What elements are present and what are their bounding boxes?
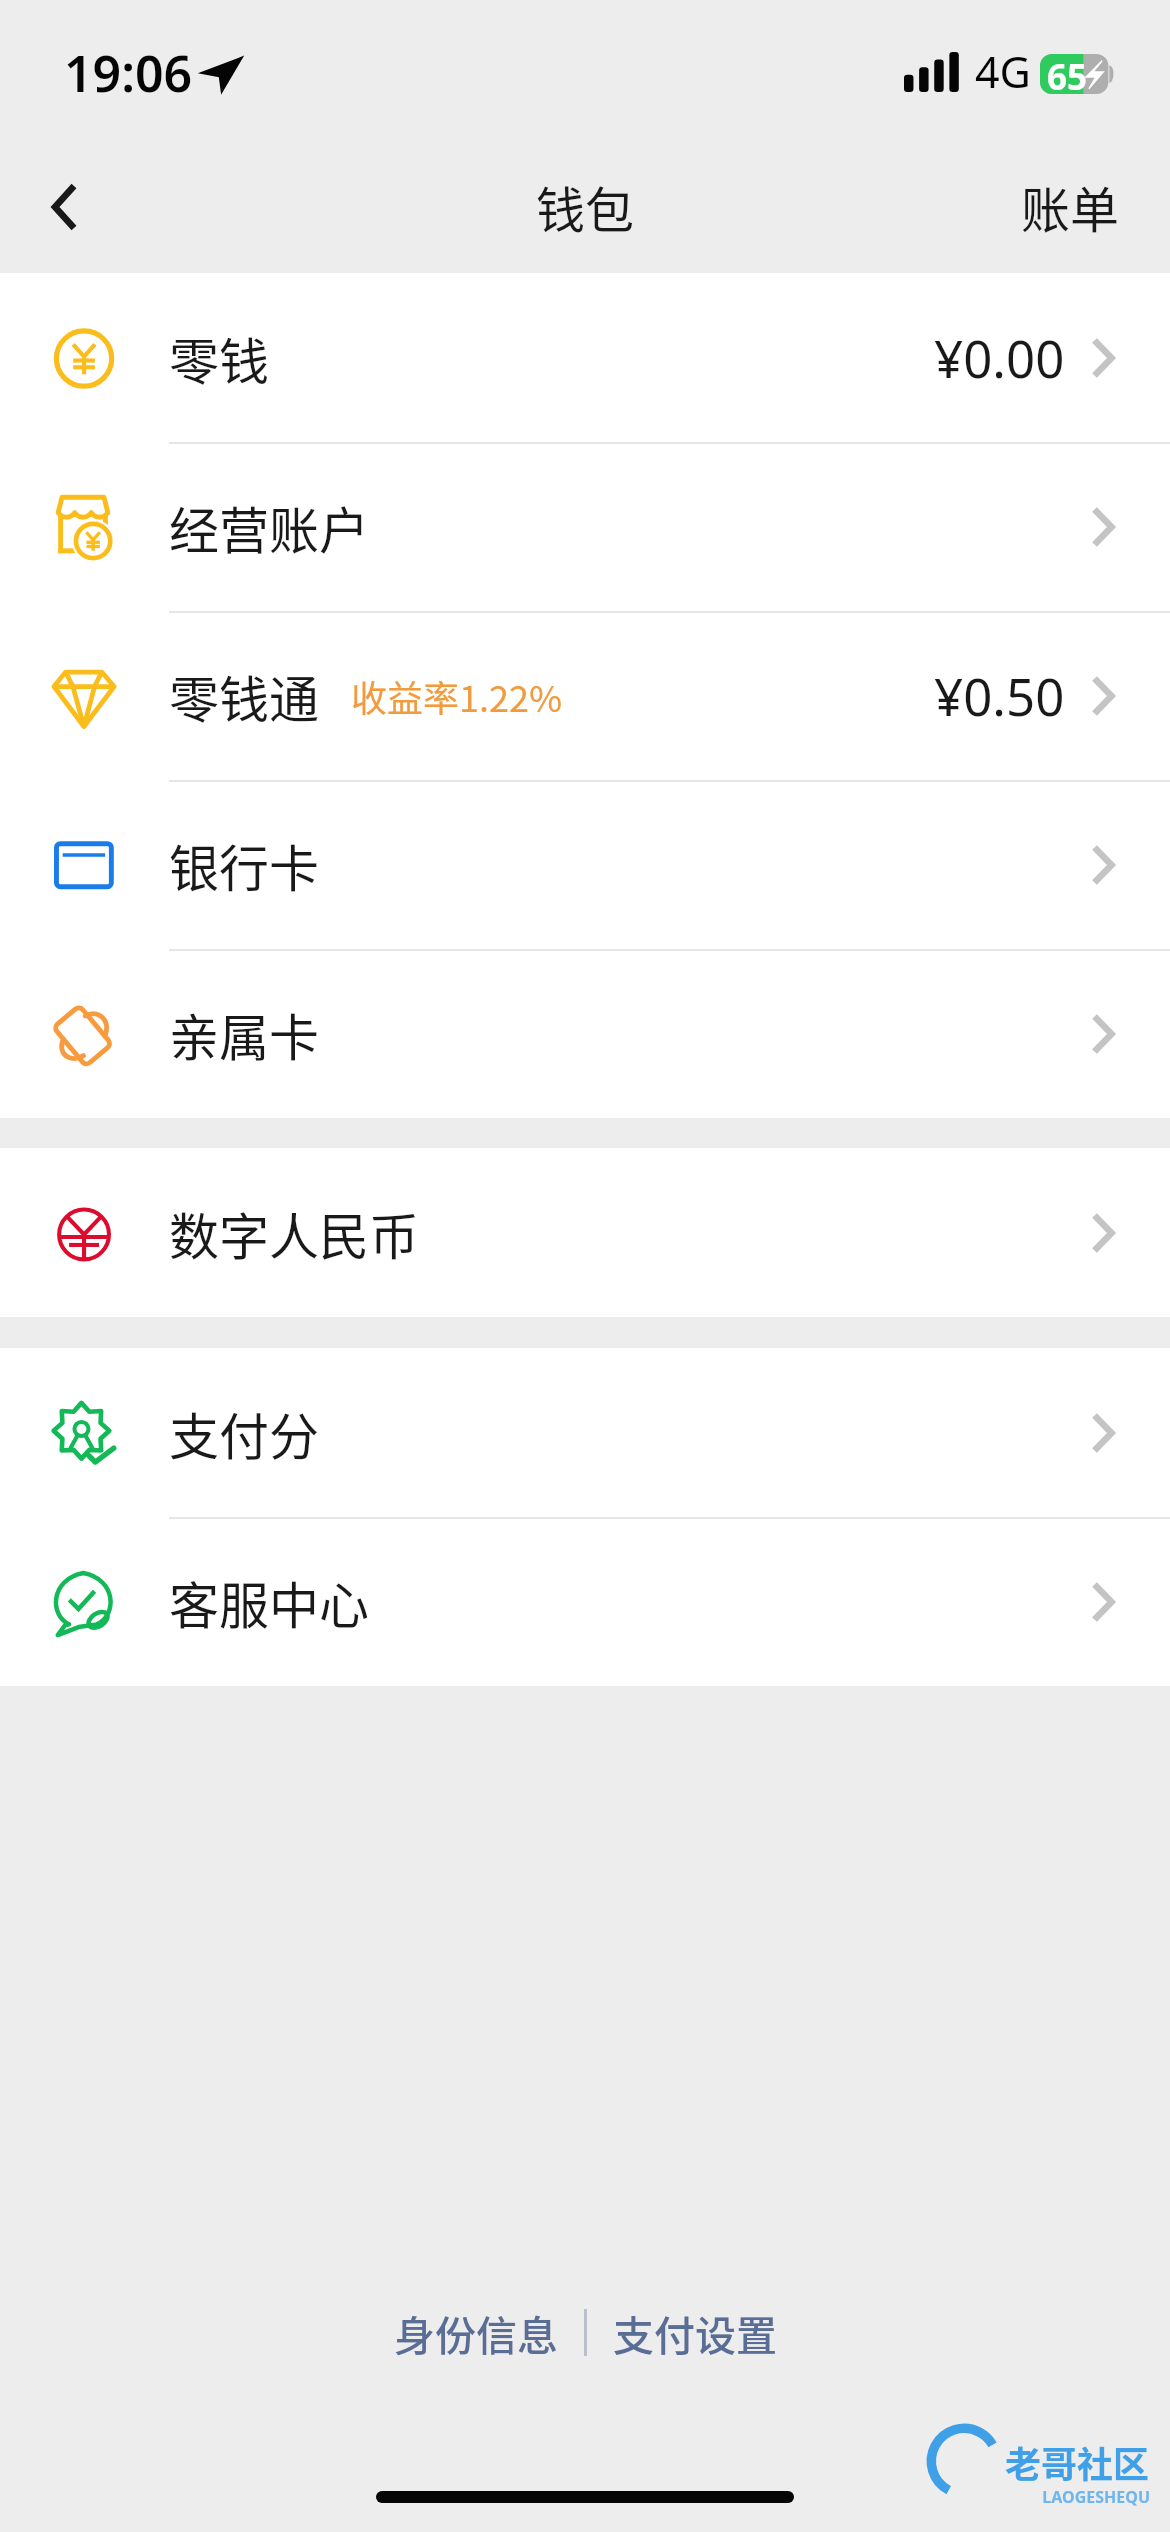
button[interactable]: 亲属卡 [0, 949, 1170, 1118]
button[interactable]: 客服中心 [0, 1517, 1170, 1686]
staticText: 账单 [1021, 171, 1120, 242]
staticText: ¥0.00 [934, 323, 1065, 392]
staticText: 老哥社区 [1005, 2436, 1150, 2488]
staticText: 支付分 [169, 1397, 319, 1469]
staticText: 支付设置 [613, 2303, 777, 2362]
button[interactable]: 身份信息 [380, 2289, 572, 2376]
staticText: 零钱通 [169, 660, 319, 732]
staticText: 零钱 [169, 322, 269, 394]
staticText: 银行卡 [169, 829, 319, 901]
staticText: 亲属卡 [169, 998, 319, 1070]
button[interactable]: 银行卡 [0, 780, 1170, 949]
button[interactable]: 零钱 [0, 273, 1170, 442]
button[interactable]: 数字人民币 [0, 1148, 1170, 1317]
staticText: 身份信息 [394, 2303, 558, 2362]
staticText: ¥0.50 [934, 661, 1065, 730]
staticText: 4G [975, 42, 1031, 101]
staticText: 钱包 [536, 171, 635, 242]
button[interactable]: 账单 [991, 140, 1170, 273]
staticText: 19:06 [64, 39, 193, 107]
button[interactable]: 经营账户 [0, 442, 1170, 611]
staticText: 客服中心 [169, 1566, 369, 1638]
staticText: LAOGESHEQU [1042, 2486, 1150, 2508]
staticText: 数字人民币 [169, 1197, 419, 1269]
button[interactable]: 零钱通 [0, 611, 1170, 780]
staticText: 65 [1047, 53, 1088, 93]
button[interactable]: 支付分 [0, 1348, 1170, 1517]
button[interactable]: Back [0, 140, 140, 273]
staticText: 收益率1.22% [351, 670, 563, 722]
staticText: 经营账户 [169, 491, 369, 563]
button[interactable]: 支付设置 [599, 2289, 791, 2376]
